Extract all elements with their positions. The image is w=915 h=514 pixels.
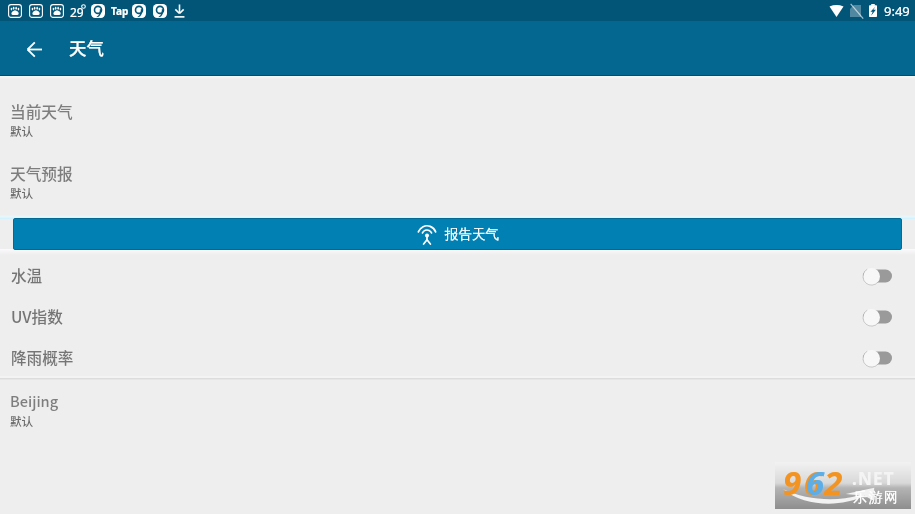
staticText: 29 — [70, 4, 84, 20]
button[interactable]: 水温 — [0, 255, 915, 296]
button[interactable]: UV指数 — [0, 296, 915, 337]
staticText: 962 — [783, 460, 846, 505]
staticText: 默认 — [10, 413, 34, 430]
button[interactable]: Back — [10, 25, 58, 73]
staticText: 9:49 — [884, 2, 910, 20]
staticText: 默认 — [10, 123, 34, 140]
staticText: 默认 — [10, 185, 34, 202]
staticText: Beijing — [10, 390, 59, 411]
staticText: 天气 — [69, 35, 104, 60]
staticText: 当前天气 — [10, 100, 73, 123]
staticText: 乐游网 — [853, 489, 900, 507]
staticText: .NET — [852, 467, 895, 490]
button[interactable]: 报告天气 — [13, 218, 902, 250]
staticText: 水温 — [11, 264, 43, 287]
staticText: 6 — [806, 460, 827, 505]
staticText: UV指数 — [11, 305, 63, 328]
staticText: 天气预报 — [10, 162, 73, 185]
button[interactable]: 降雨概率 — [0, 337, 915, 378]
staticText: Tap — [111, 4, 129, 18]
staticText: 报告天气 — [445, 226, 499, 243]
staticText: 降雨概率 — [11, 346, 74, 369]
